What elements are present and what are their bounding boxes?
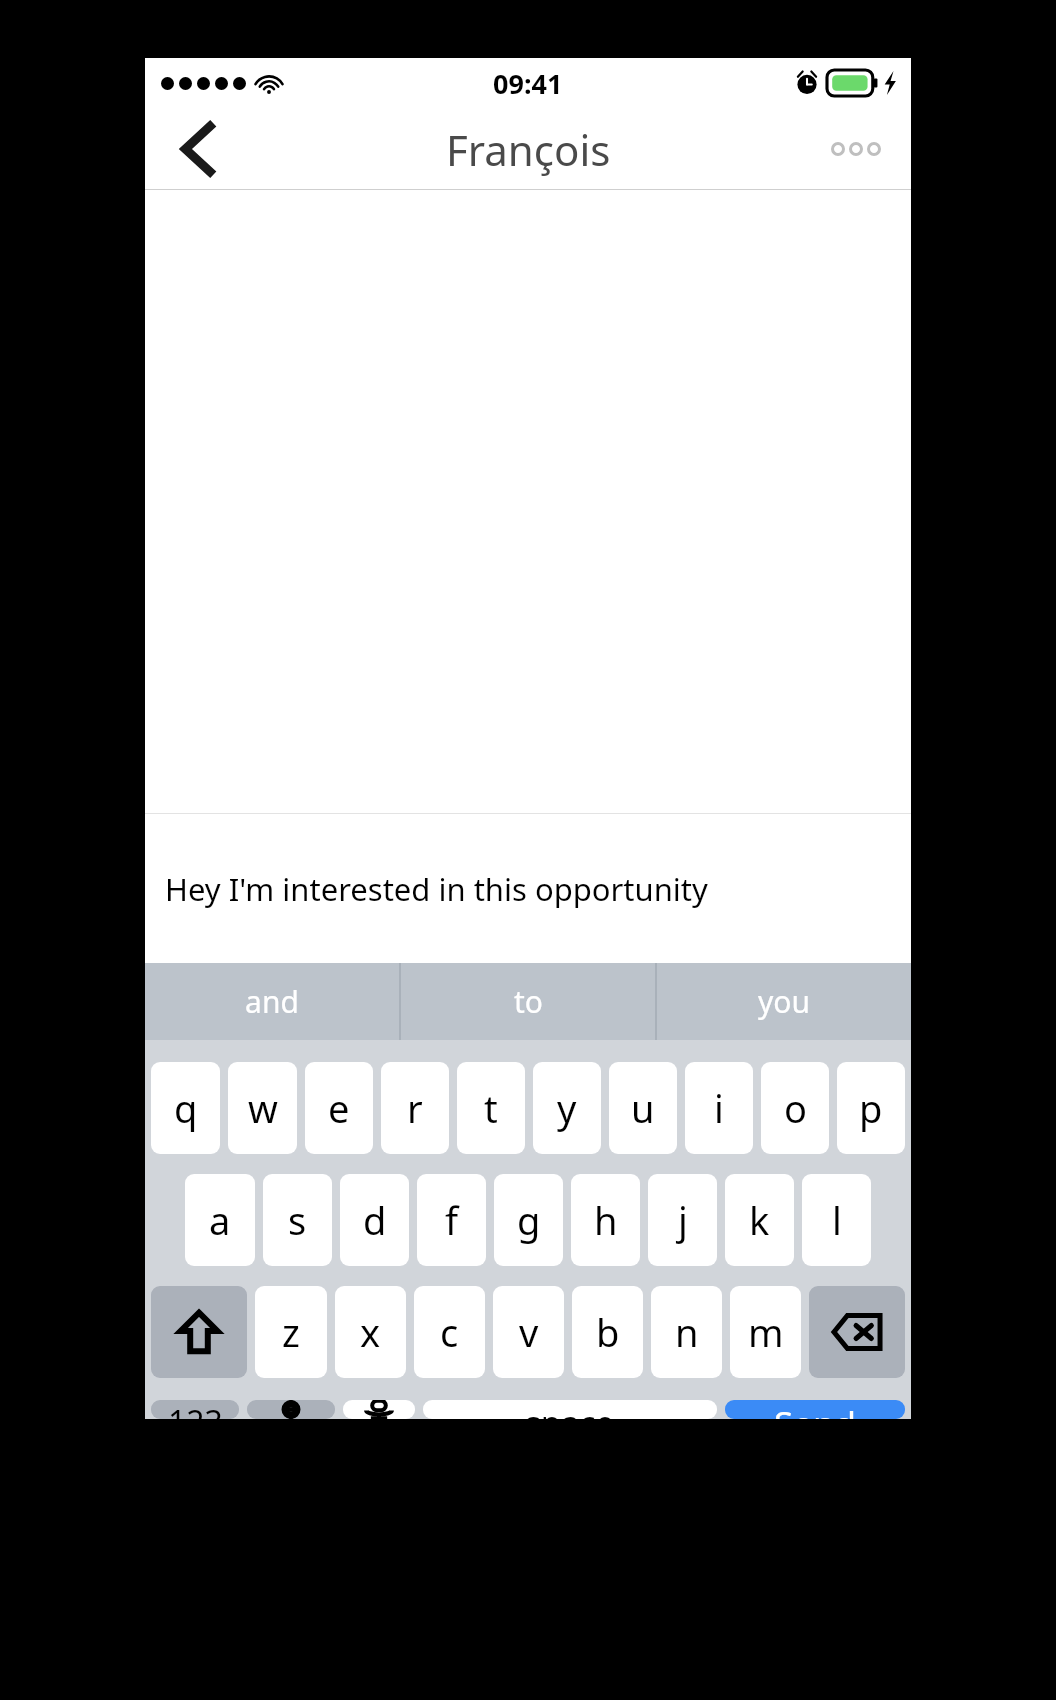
staticText: g	[517, 1194, 541, 1246]
staticText: l	[832, 1194, 842, 1246]
staticText: Send	[774, 1400, 857, 1419]
button[interactable]: y	[533, 1062, 601, 1154]
staticText: p	[859, 1082, 883, 1134]
button[interactable]: Backspace	[809, 1286, 905, 1378]
button[interactable]: 123	[151, 1400, 239, 1419]
staticText: s	[288, 1194, 307, 1246]
button[interactable]: to	[401, 963, 655, 1040]
staticText: you	[758, 981, 810, 1022]
staticText: and	[245, 981, 299, 1022]
button[interactable]: g	[494, 1174, 563, 1266]
button[interactable]: c	[414, 1286, 485, 1378]
staticText: y	[557, 1082, 577, 1134]
button[interactable]: you	[657, 963, 911, 1040]
button[interactable]: q	[151, 1062, 220, 1154]
button[interactable]: i	[685, 1062, 753, 1154]
button[interactable]: e	[305, 1062, 373, 1154]
button[interactable]: f	[417, 1174, 486, 1266]
button[interactable]: u	[609, 1062, 677, 1154]
button[interactable]: o	[761, 1062, 829, 1154]
staticText: t	[484, 1082, 498, 1134]
button[interactable]: Send	[725, 1400, 905, 1419]
button[interactable]: p	[837, 1062, 905, 1154]
staticText: a	[209, 1194, 231, 1246]
button[interactable]: Shift	[151, 1286, 247, 1378]
staticText: d	[363, 1194, 387, 1246]
button[interactable]: and	[145, 963, 399, 1040]
staticText: k	[749, 1194, 770, 1246]
staticText: q	[174, 1082, 198, 1134]
staticText: x	[360, 1306, 381, 1358]
button[interactable]: l	[802, 1174, 871, 1266]
staticText: François	[446, 121, 611, 178]
staticText: Hey I'm interested in this opportunity	[165, 868, 708, 910]
staticText: o	[784, 1082, 807, 1134]
staticText: z	[282, 1306, 300, 1358]
staticText: i	[714, 1082, 724, 1134]
staticText: n	[675, 1306, 699, 1358]
staticText: 123	[168, 1400, 223, 1419]
button[interactable]: a	[185, 1174, 255, 1266]
staticText: b	[596, 1306, 620, 1358]
button[interactable]: space	[423, 1400, 717, 1419]
button[interactable]: s	[263, 1174, 332, 1266]
button[interactable]: h	[571, 1174, 640, 1266]
button[interactable]: b	[572, 1286, 643, 1378]
button[interactable]: x	[335, 1286, 406, 1378]
staticText: u	[631, 1082, 655, 1134]
button[interactable]: Hey I'm interested in this opportunity	[145, 814, 911, 963]
staticText: m	[748, 1306, 784, 1358]
staticText: 09:41	[493, 65, 563, 102]
staticText: e	[328, 1082, 350, 1134]
staticText: c	[440, 1306, 459, 1358]
button[interactable]: Dictate	[343, 1400, 415, 1419]
button[interactable]: z	[255, 1286, 327, 1378]
staticText: v	[519, 1306, 539, 1358]
staticText: r	[407, 1082, 423, 1134]
staticText: to	[514, 981, 543, 1022]
button[interactable]: w	[228, 1062, 297, 1154]
staticText: space	[525, 1400, 615, 1419]
staticText: j	[678, 1194, 688, 1246]
button[interactable]: d	[340, 1174, 409, 1266]
staticText: f	[445, 1194, 459, 1246]
button[interactable]: m	[730, 1286, 801, 1378]
button[interactable]: More options	[821, 124, 891, 174]
button[interactable]: j	[648, 1174, 717, 1266]
button[interactable]: Back	[167, 117, 231, 181]
staticText: h	[594, 1194, 618, 1246]
staticText: w	[248, 1082, 278, 1134]
button[interactable]: n	[651, 1286, 722, 1378]
button[interactable]: r	[381, 1062, 449, 1154]
button[interactable]: v	[493, 1286, 564, 1378]
button[interactable]: k	[725, 1174, 794, 1266]
button[interactable]: t	[457, 1062, 525, 1154]
button[interactable]: Change keyboard	[247, 1400, 335, 1419]
